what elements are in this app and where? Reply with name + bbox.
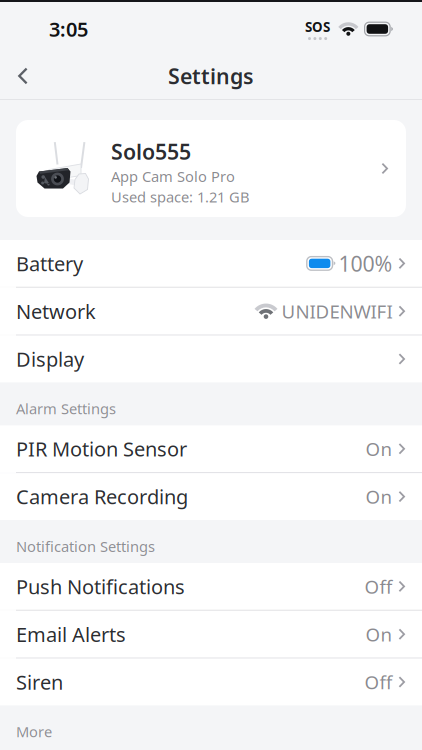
staticText: 3:05 <box>49 16 88 42</box>
staticText: Off <box>364 574 392 599</box>
button[interactable]: Siren <box>0 659 422 705</box>
staticText: App Cam Solo Pro <box>111 167 235 186</box>
button[interactable]: Camera Recording <box>0 473 422 520</box>
button[interactable]: Email Alerts <box>0 611 422 658</box>
staticText: On <box>365 436 392 461</box>
staticText: On <box>365 484 392 509</box>
button[interactable]: Display <box>0 336 422 382</box>
staticText: Off <box>364 670 392 694</box>
staticText: Network <box>16 298 96 324</box>
button[interactable]: Back <box>0 53 42 99</box>
button[interactable]: Solo555 <box>16 120 406 217</box>
staticText: Alarm Settings <box>16 399 116 418</box>
staticText: More <box>16 722 52 741</box>
staticText: Battery <box>16 250 83 277</box>
staticText: Email Alerts <box>16 621 126 647</box>
staticText: Notification Settings <box>16 536 155 556</box>
staticText: Solo555 <box>111 137 191 166</box>
staticText: Display <box>16 346 84 372</box>
staticText: Settings <box>168 62 254 90</box>
staticText: Used space: 1.21 GB <box>111 187 250 207</box>
button[interactable]: Network <box>0 288 422 335</box>
staticText: Siren <box>16 669 63 695</box>
staticText: PIR Motion Sensor <box>16 435 187 462</box>
button[interactable]: Push Notifications <box>0 563 422 610</box>
staticText: SOS <box>305 18 330 36</box>
staticText: UNIDENWIFI <box>281 299 392 324</box>
staticText: Camera Recording <box>16 483 188 510</box>
staticText: Push Notifications <box>16 573 185 600</box>
staticText: On <box>365 622 392 647</box>
button[interactable]: Battery <box>0 240 422 287</box>
staticText: 100% <box>338 249 392 277</box>
button[interactable]: PIR Motion Sensor <box>0 425 422 472</box>
